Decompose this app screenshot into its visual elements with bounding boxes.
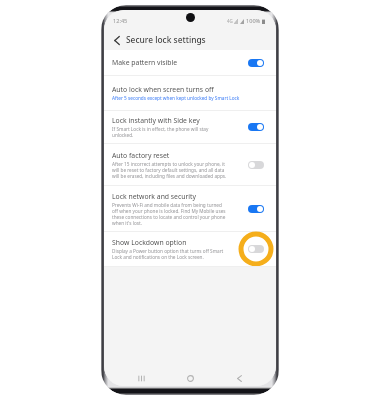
staticText: 100% [246, 17, 261, 25]
button[interactable]: Lock instantly with Side key [104, 111, 276, 144]
button[interactable]: Recent apps [133, 371, 150, 386]
button[interactable]: Make pattern visible [104, 50, 276, 76]
button[interactable]: Auto factory reset [104, 144, 276, 186]
button[interactable]: Toggle [248, 245, 264, 253]
staticText: Prevents Wi-Fi and mobile data from bein… [112, 202, 229, 226]
staticText: Auto factory reset [112, 151, 170, 160]
button[interactable]: Toggle [248, 205, 264, 213]
button[interactable]: Toggle [248, 59, 264, 67]
button[interactable]: Toggle [248, 123, 264, 131]
staticText: Display a Power button option that turns… [112, 248, 229, 260]
button[interactable]: Back [231, 371, 248, 386]
staticText: After 15 incorrect attempts to unlock yo… [112, 161, 229, 179]
button[interactable]: Show Lockdown option [104, 232, 276, 267]
button[interactable]: Toggle [248, 161, 264, 169]
staticText: Show Lockdown option [112, 238, 187, 247]
button[interactable]: Back [108, 31, 126, 49]
button[interactable]: Auto lock when screen turns off [104, 76, 276, 111]
staticText: If Smart Lock is in effect, the phone wi… [112, 126, 229, 138]
staticText: Secure lock settings [126, 34, 206, 45]
staticText: 12:45 [113, 17, 128, 25]
staticText: Auto lock when screen turns off [112, 85, 214, 94]
staticText: After 5 seconds except when kept unlocke… [112, 95, 240, 101]
button[interactable]: Lock network and security [104, 186, 276, 232]
staticText: Make pattern visible [112, 58, 178, 67]
button[interactable]: Home [182, 371, 199, 386]
staticText: Lock network and security [112, 192, 197, 201]
staticText: 4G [227, 18, 233, 24]
staticText: Lock instantly with Side key [112, 116, 200, 125]
